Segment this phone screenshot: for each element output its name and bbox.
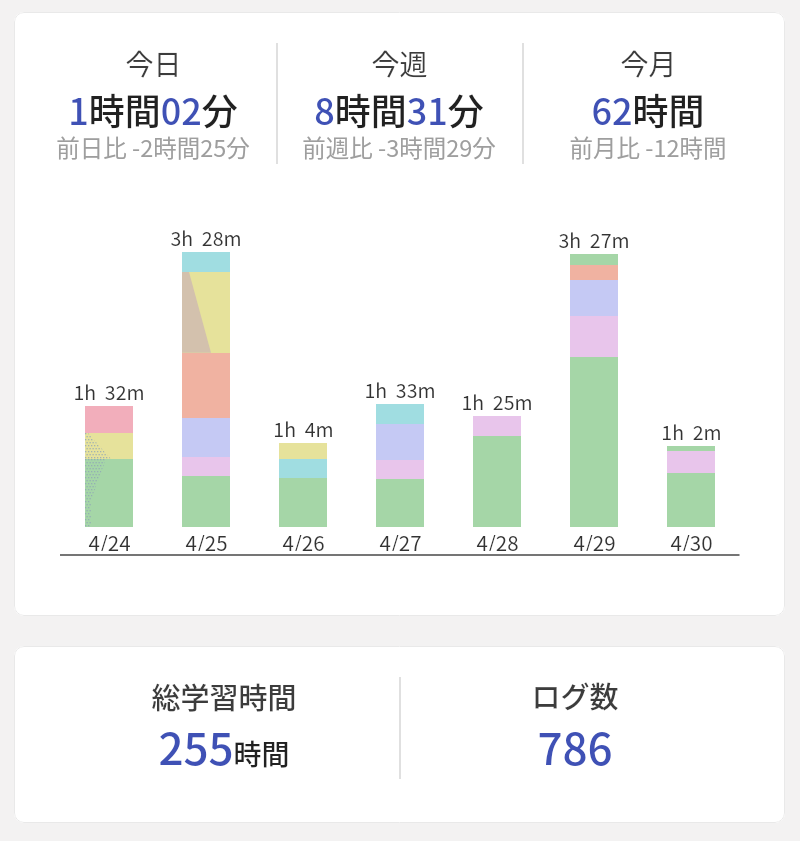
- staticText: 4/25: [185, 527, 228, 551]
- staticText: 今週: [371, 43, 428, 84]
- staticText: 1h 4m: [273, 414, 334, 440]
- staticText: 総学習時間: [151, 675, 297, 717]
- staticText: 4/24: [88, 527, 131, 551]
- staticText: 前月比 -12時間: [569, 130, 727, 164]
- staticText: ログ数: [531, 674, 619, 716]
- staticText: 4/26: [282, 527, 325, 551]
- staticText: 3h 28m: [170, 223, 242, 249]
- staticText: 4/28: [476, 527, 519, 551]
- staticText: 1h 32m: [73, 377, 145, 403]
- staticText: 前日比 -2時間25分: [56, 130, 250, 164]
- staticText: 4/27: [379, 527, 422, 551]
- staticText: 8時間31分: [314, 83, 484, 129]
- staticText: 今日: [125, 43, 182, 84]
- staticText: 4/30: [670, 527, 713, 551]
- staticText: 前週比 -3時間29分: [302, 130, 496, 164]
- staticText: 1h 2m: [661, 417, 722, 443]
- button[interactable]: [14, 646, 785, 823]
- staticText: 今月: [620, 43, 677, 84]
- staticText: 62時間: [591, 83, 705, 129]
- staticText: 1時間02分: [68, 83, 238, 129]
- button[interactable]: [14, 12, 785, 616]
- staticText: 255時間: [158, 714, 290, 774]
- staticText: 4/29: [573, 527, 616, 551]
- staticText: 1h 33m: [364, 375, 436, 401]
- staticText: 786: [537, 714, 613, 774]
- staticText: 3h 27m: [558, 225, 630, 251]
- staticText: 1h 25m: [461, 387, 533, 413]
